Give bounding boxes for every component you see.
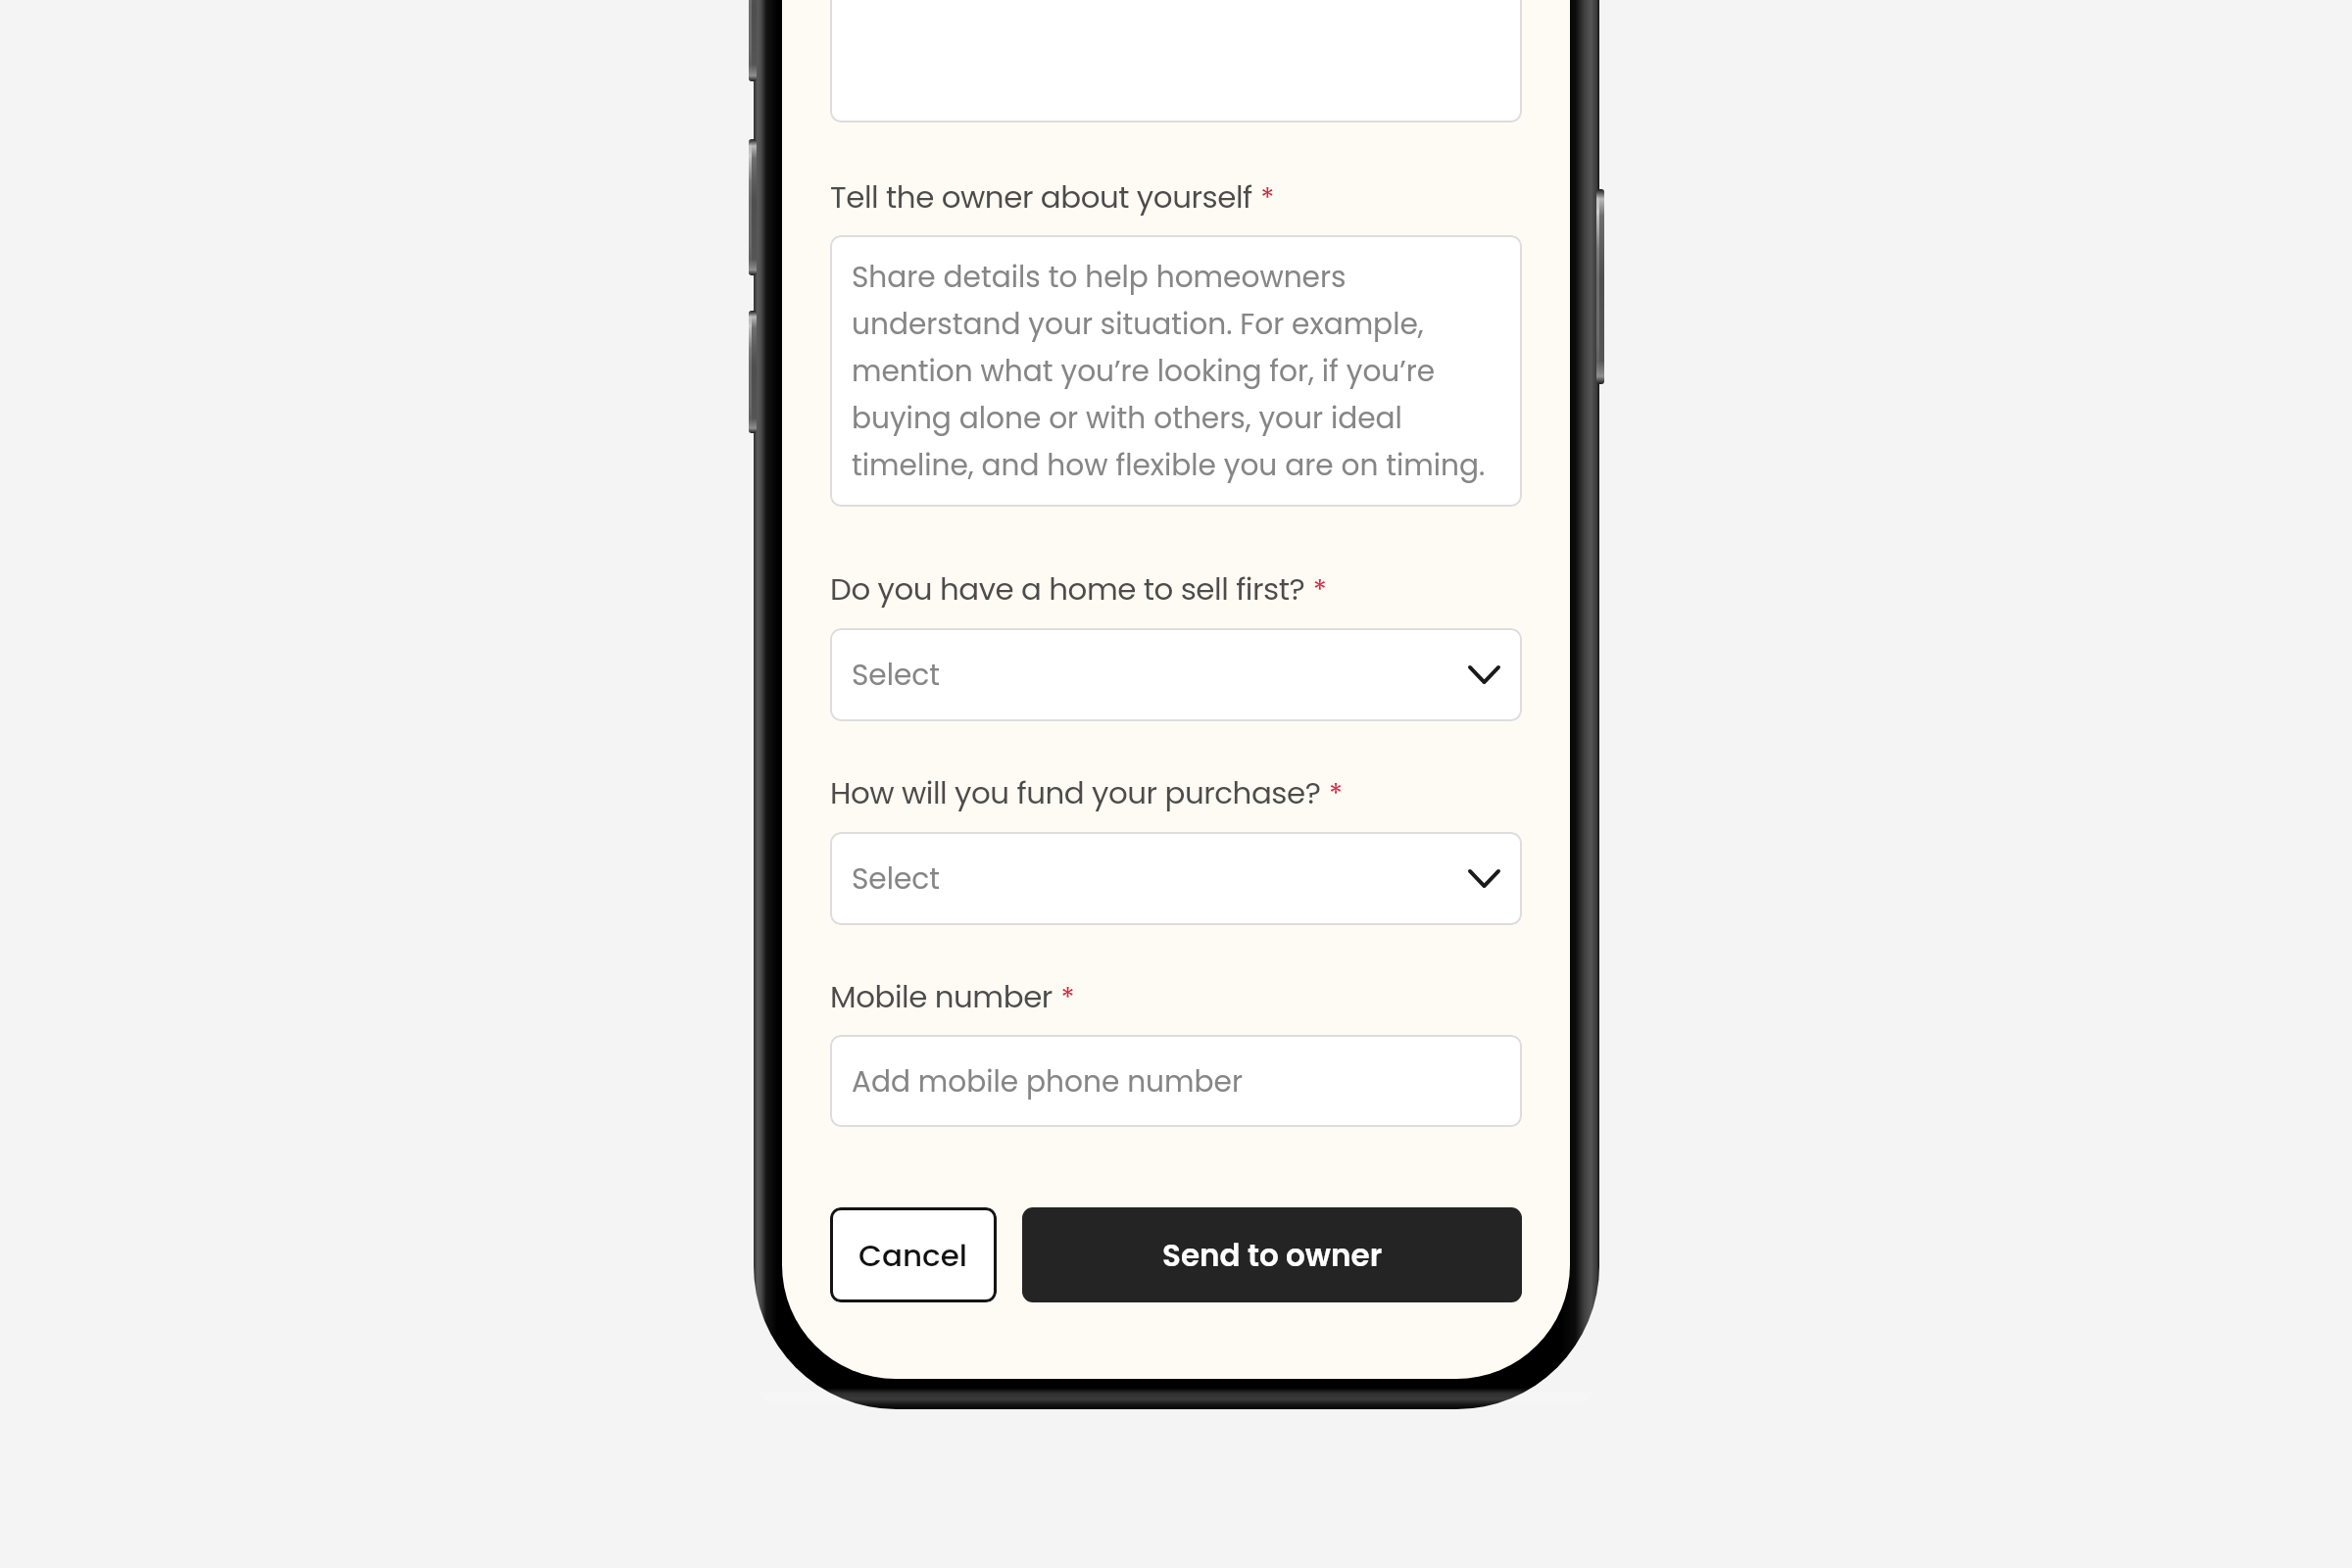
staticText: Do you have a home to sell first? *: [830, 568, 1327, 611]
staticText: How will you fund your purchase? *: [830, 772, 1343, 814]
other: Open Do you have a home to sell first? o…: [1468, 665, 1500, 684]
other: Open How will you fund your purchase? op…: [1468, 869, 1500, 888]
staticText: Tell the owner about yourself *: [830, 176, 1274, 219]
button[interactable]: How will you fund your purchase?: [830, 832, 1522, 925]
staticText: Share details to help homeowners underst…: [852, 257, 1508, 486]
staticText: Mobile number *: [830, 976, 1075, 1018]
button[interactable]: Add mobile phone number: [830, 1035, 1522, 1127]
button[interactable]: Do you have a home to sell first?: [830, 628, 1522, 721]
button[interactable]: Previous question: [830, 0, 1522, 122]
staticText: Add mobile phone number: [852, 1061, 1243, 1102]
button[interactable]: Tell the owner about yourself: [830, 235, 1522, 507]
button[interactable]: Cancel: [830, 1207, 997, 1302]
staticText: Cancel: [858, 1234, 968, 1276]
button[interactable]: Send to owner: [1022, 1207, 1522, 1302]
staticText: Send to owner: [1162, 1234, 1383, 1276]
staticText: Select: [852, 655, 941, 695]
staticText: Select: [852, 858, 941, 899]
